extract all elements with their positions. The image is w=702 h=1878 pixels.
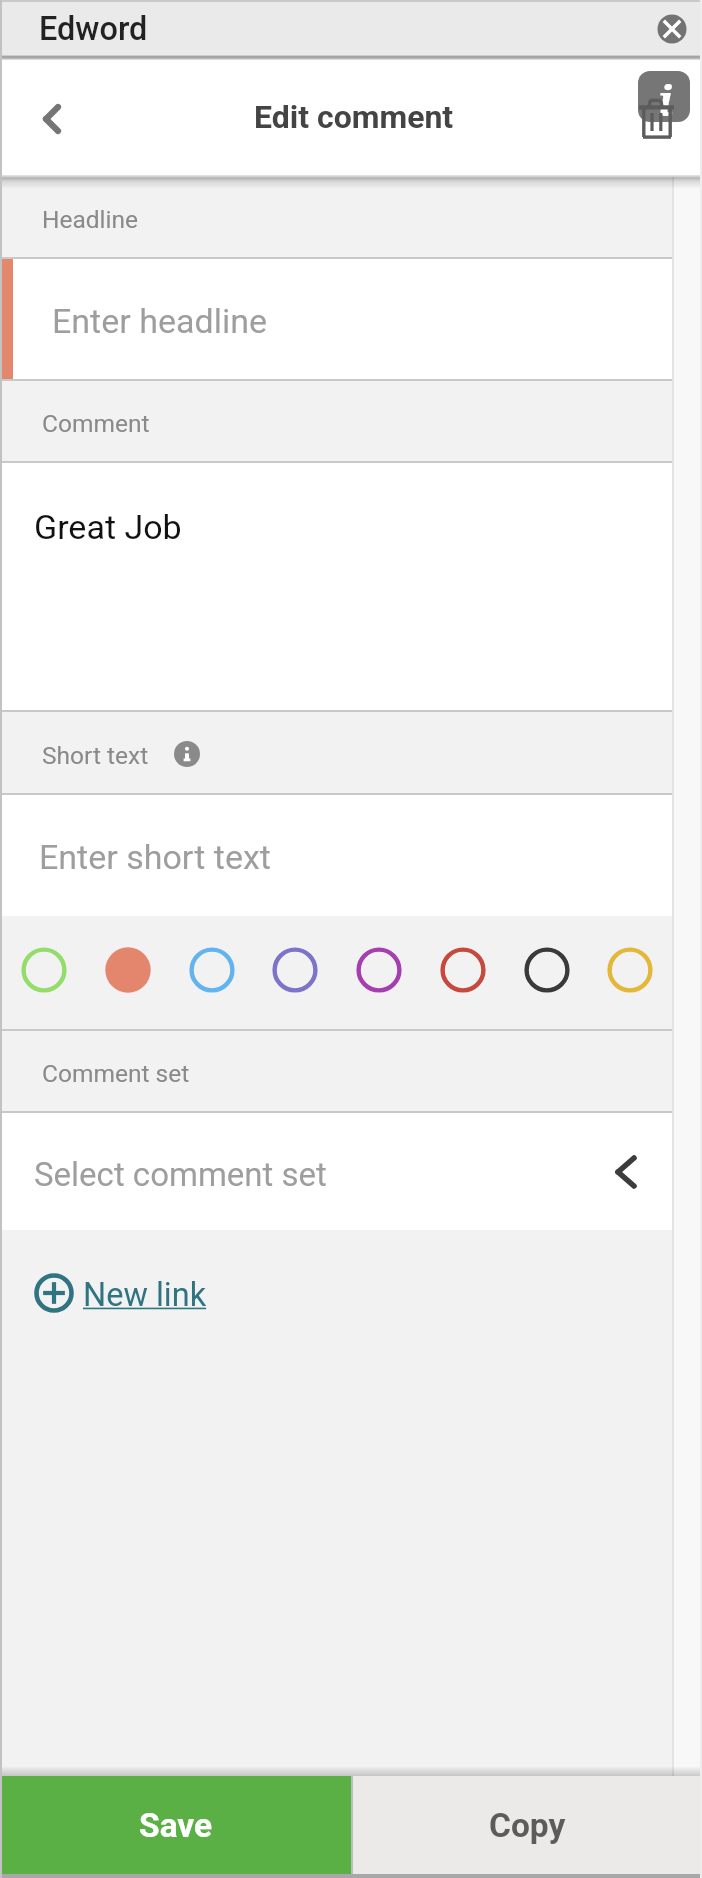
button[interactable]: Delete [634,95,679,141]
staticText: Enter headline [52,301,267,341]
button[interactable]: Enter short text [0,795,672,916]
staticText: Select comment set [34,1155,327,1194]
button[interactable]: New link [34,1272,207,1314]
button[interactable]: Salmon colour [100,942,156,998]
staticText: Edit comment [254,98,454,136]
staticText: Copy [489,1806,566,1845]
button[interactable]: Save [0,1776,351,1874]
button[interactable]: Black colour [519,942,575,998]
staticText: Comment set [42,1059,190,1088]
staticText: Comment [42,409,150,438]
button[interactable]: Yellow colour [602,942,658,998]
button[interactable]: Close [650,7,694,51]
button[interactable]: Select comment set [0,1113,672,1230]
staticText: Edword [39,10,148,48]
button[interactable]: Info [638,71,690,122]
button[interactable]: Information [172,739,202,769]
button[interactable]: Enter headline [0,259,672,381]
button[interactable]: Copy [353,1776,702,1874]
staticText: Great Job [34,507,182,547]
button[interactable]: Blue colour [184,942,240,998]
staticText: Save [139,1806,213,1845]
button[interactable]: Green colour [16,942,72,998]
staticText: Headline [42,205,139,234]
button[interactable]: Red colour [435,942,491,998]
staticText: New link [83,1276,207,1314]
button[interactable]: Indigo colour [267,942,323,998]
staticText: Short text [42,741,149,770]
staticText: i [658,71,673,120]
button[interactable]: Back [22,89,82,149]
button[interactable]: Great Job [0,463,672,712]
button[interactable]: Purple colour [351,942,407,998]
staticText: Enter short text [39,837,271,877]
